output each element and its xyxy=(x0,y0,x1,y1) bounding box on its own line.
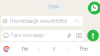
button[interactable]: WhatsApp voice call xyxy=(87,1,100,15)
staticText: TODAY xyxy=(48,5,59,9)
button[interactable]: I'm xyxy=(12,42,38,56)
staticText: 12:20 xyxy=(74,19,82,23)
staticText: The xyxy=(79,46,88,52)
button[interactable]: This message was deleted xyxy=(1,16,83,26)
button[interactable]: Type a message xyxy=(1,30,85,41)
button[interactable]: I xyxy=(40,42,68,56)
staticText: I'm xyxy=(22,46,28,52)
button[interactable]: The xyxy=(69,42,97,56)
staticText: This message was deleted xyxy=(9,18,67,24)
button[interactable]: Google search xyxy=(0,42,12,56)
staticText: G xyxy=(5,47,8,52)
staticText: Type a message xyxy=(10,33,44,38)
button[interactable]: Record voice message xyxy=(87,30,99,41)
